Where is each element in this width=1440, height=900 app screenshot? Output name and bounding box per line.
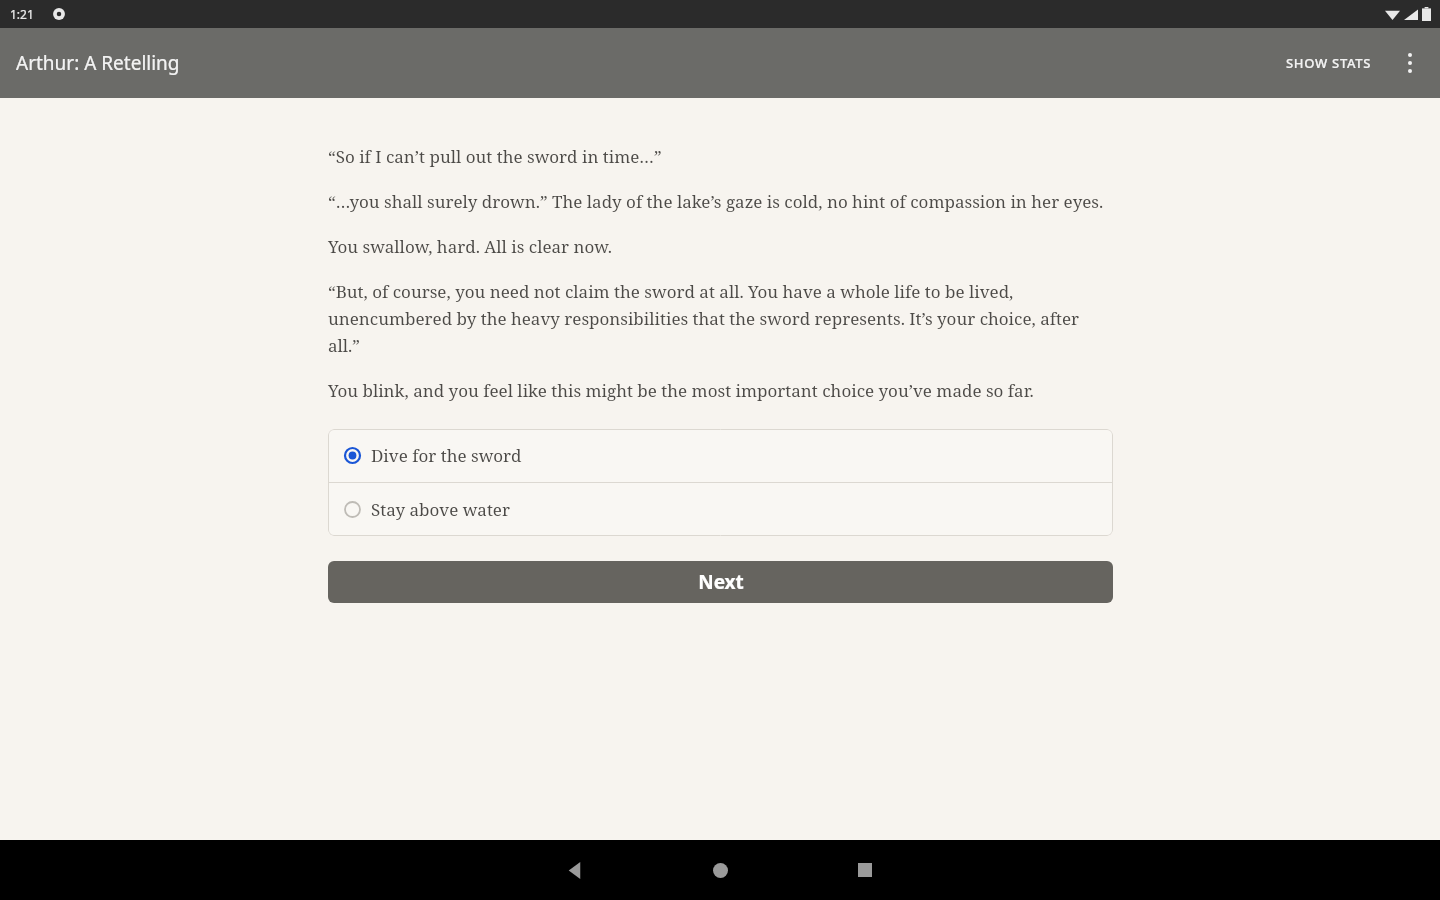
staticText: Dive for the sword — [371, 444, 522, 467]
button[interactable]: Back — [545, 840, 605, 900]
staticText: You blink, and you feel like this might … — [328, 379, 1034, 402]
staticText: Next — [698, 569, 744, 595]
button[interactable]: SHOW STATS — [1272, 42, 1386, 84]
button[interactable]: Stay above water — [328, 483, 1113, 536]
button[interactable]: Home — [690, 840, 750, 900]
staticText: “But, of course, you need not claim the … — [328, 280, 1113, 357]
button[interactable]: Dive for the sword — [328, 429, 1113, 482]
staticText: You swallow, hard. All is clear now. — [328, 235, 613, 258]
staticText: “…you shall surely drown.” The lady of t… — [328, 190, 1104, 213]
staticText: 1:21 — [10, 6, 34, 22]
button[interactable]: Recent apps — [835, 840, 895, 900]
staticText: Arthur: A Retelling — [16, 50, 180, 76]
button[interactable]: More options — [1386, 39, 1434, 87]
staticText: Stay above water — [371, 498, 510, 521]
button[interactable]: Next — [328, 561, 1113, 603]
staticText: SHOW STATS — [1286, 54, 1372, 72]
staticText: “So if I can’t pull out the sword in tim… — [328, 145, 662, 168]
